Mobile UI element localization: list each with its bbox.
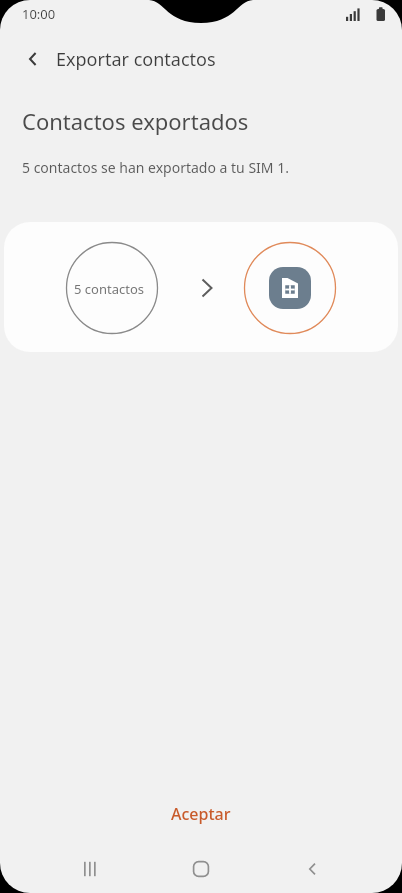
button[interactable]: Recientes: [67, 847, 111, 891]
staticText: Exportar contactos: [56, 47, 216, 72]
staticText: Contactos exportados: [22, 106, 249, 136]
staticText: 10:00: [22, 5, 56, 23]
staticText: 5 contactos: [74, 280, 144, 298]
button[interactable]: Aceptar: [0, 792, 402, 836]
button[interactable]: Atrás: [291, 847, 335, 891]
button[interactable]: Atrás: [14, 39, 54, 79]
staticText: 5 contactos se han exportado a tu SIM 1.: [22, 158, 289, 177]
staticText: Aceptar: [171, 803, 231, 825]
button[interactable]: Inicio: [179, 847, 223, 891]
button[interactable]: 5 contactos: [4, 222, 398, 352]
